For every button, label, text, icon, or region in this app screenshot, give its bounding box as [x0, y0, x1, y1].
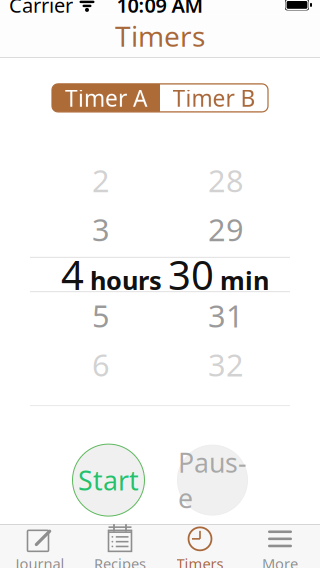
button[interactable]: Recipes [80, 525, 160, 568]
staticText: 2 [92, 160, 110, 201]
staticText: min [220, 263, 269, 297]
staticText: 3 [92, 209, 110, 250]
button[interactable]: Start [72, 444, 144, 516]
staticText: 28 [208, 160, 244, 201]
staticText: 30 [168, 248, 214, 301]
staticText: hours [90, 263, 162, 297]
staticText: 29 [208, 209, 244, 250]
button[interactable]: More [240, 525, 320, 568]
staticText: Recipes [94, 554, 146, 568]
staticText: Start [78, 462, 139, 498]
button[interactable]: Timer A [52, 84, 160, 112]
button[interactable]: Timers [160, 525, 240, 568]
button[interactable]: Pause [177, 445, 247, 515]
button[interactable]: Timer B [160, 84, 268, 112]
button[interactable]: Journal [0, 525, 80, 568]
staticText: More [262, 554, 298, 568]
staticText: 5 [92, 295, 110, 336]
staticText: Pause [178, 445, 247, 515]
staticText: Journal [15, 554, 64, 568]
staticText: Timers [115, 17, 205, 54]
staticText: 10:09 AM [116, 0, 203, 18]
staticText: 6 [92, 344, 110, 385]
staticText: 31 [208, 295, 244, 336]
staticText: 4 [61, 248, 84, 301]
staticText: Carrier [9, 0, 73, 18]
staticText: Timers [176, 554, 223, 568]
staticText: Timer B [172, 83, 255, 113]
staticText: 32 [208, 344, 244, 385]
staticText: Timer A [65, 83, 147, 113]
